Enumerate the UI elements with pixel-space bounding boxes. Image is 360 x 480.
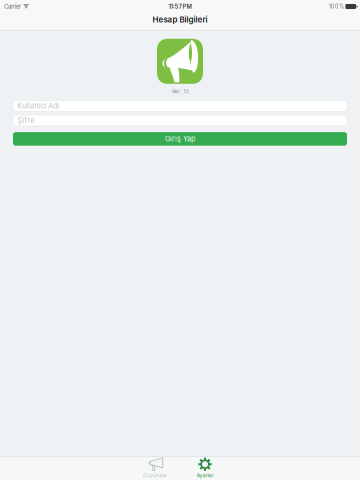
button[interactable]: Kullanıcı Adı: [13, 100, 347, 111]
staticText: Ver. 1.1: [171, 88, 188, 94]
button[interactable]: Duyurular: [130, 456, 180, 480]
button[interactable]: Şifre: [13, 115, 347, 126]
staticText: Carrier: [4, 3, 21, 10]
staticText: Giriş Yap: [165, 134, 195, 143]
staticText: Hesap Bilgileri: [152, 15, 207, 24]
staticText: 100%: [329, 3, 344, 10]
staticText: Ayarlar: [196, 472, 213, 479]
staticText: Duyurular: [143, 472, 167, 479]
button[interactable]: Giriş Yap: [13, 132, 347, 146]
button[interactable]: Ayarlar: [180, 456, 230, 480]
staticText: Şifre: [17, 116, 34, 125]
staticText: Kullanıcı Adı: [17, 101, 59, 110]
staticText: 11:57 PM: [168, 3, 191, 10]
